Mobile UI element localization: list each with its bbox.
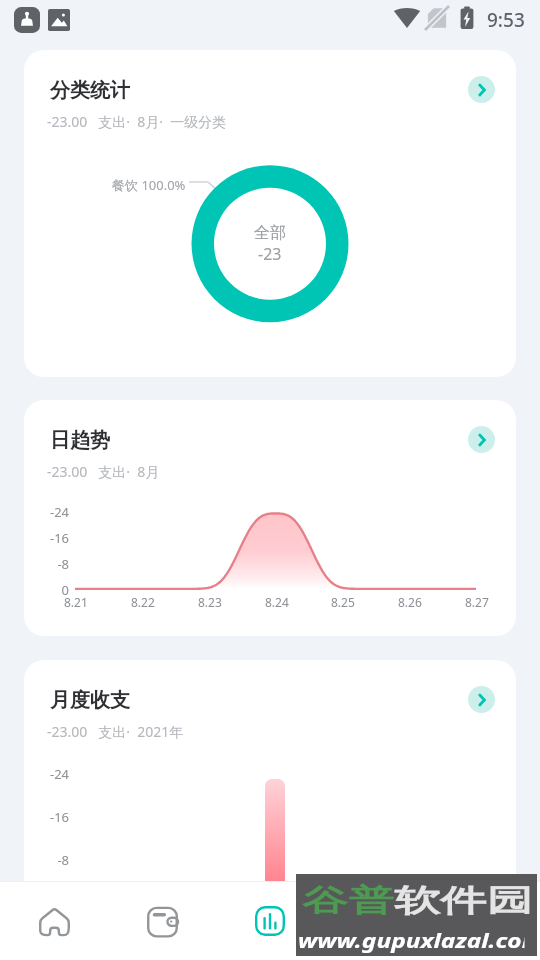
button[interactable]: Details [468, 76, 495, 103]
staticText: 日趋势 [50, 428, 110, 453]
button[interactable]: Statistics [216, 882, 324, 960]
staticText: 8.26 [398, 594, 422, 610]
button[interactable]: Details [468, 686, 495, 713]
staticText: -23 [258, 243, 282, 265]
staticText: 全部 [254, 223, 286, 243]
staticText: -23.00 支出· 2021年 [47, 722, 184, 741]
button[interactable]: Details [468, 426, 495, 453]
staticText: 月度收支 [50, 688, 130, 713]
staticText: -23.00 支出· 8月· 一级分类 [47, 112, 227, 131]
staticText: 8.23 [198, 594, 222, 610]
staticText: 分类统计 [50, 78, 130, 103]
staticText: 8.25 [331, 594, 355, 610]
button[interactable]: Me [432, 882, 540, 960]
button[interactable]: 分类统计 [24, 50, 516, 377]
button[interactable]: Home [0, 882, 108, 960]
staticText: -8 [57, 555, 69, 573]
staticText: 8.24 [265, 594, 289, 610]
button[interactable]: Discover [324, 882, 432, 960]
staticText: -16 [49, 529, 69, 547]
staticText: 软件园 [394, 882, 533, 921]
button[interactable]: 月度收支 [24, 660, 516, 900]
staticText: -23.00 支出· 8月 [47, 462, 160, 481]
staticText: -24 [49, 765, 69, 783]
staticText: 餐饮 100.0% [112, 176, 186, 194]
staticText: 8.27 [465, 594, 489, 610]
button[interactable]: Wallet [108, 882, 216, 960]
staticText: -8 [57, 851, 69, 869]
staticText: 9:53 [487, 7, 525, 33]
staticText: www.gupuxlazal.com [298, 926, 524, 953]
staticText: 0 [61, 581, 69, 599]
button[interactable]: 日趋势 [24, 400, 516, 636]
staticText: 8.21 [64, 594, 88, 610]
staticText: -16 [49, 808, 69, 826]
staticText: -24 [49, 503, 69, 521]
staticText: 谷普 [302, 882, 394, 921]
staticText: 8.22 [131, 594, 155, 610]
